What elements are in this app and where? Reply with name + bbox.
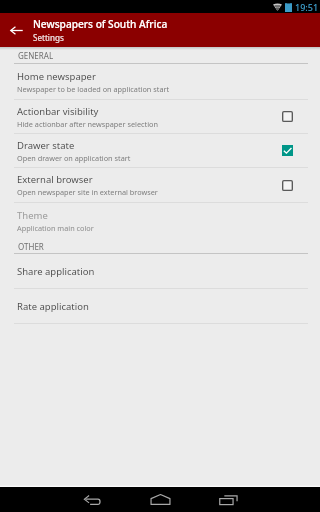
staticText: GENERAL <box>18 50 54 61</box>
staticText: Share application <box>17 265 95 278</box>
staticText: 19:51 <box>295 1 319 13</box>
staticText: Open drawer on application start <box>17 153 131 163</box>
button[interactable]: External browser <box>0 168 320 202</box>
staticText: Actionbar visibility <box>17 105 99 118</box>
staticText: Open newspaper site in external browser <box>17 187 158 197</box>
button[interactable]: Rate application <box>0 289 320 323</box>
staticText: Application main color <box>17 223 94 233</box>
staticText: External browser <box>17 173 93 186</box>
button[interactable]: Back <box>58 487 126 512</box>
button[interactable]: Home <box>126 487 194 512</box>
button[interactable]: Actionbar visibility <box>272 100 302 133</box>
staticText: Rate application <box>17 300 89 313</box>
staticText: OTHER <box>18 241 44 252</box>
button[interactable]: Theme <box>0 203 320 238</box>
button[interactable]: Navigate up <box>0 13 32 47</box>
staticText: Home newspaper <box>17 70 96 83</box>
staticText: Newspaper to be loaded on application st… <box>17 84 170 94</box>
staticText: Newspapers of South Africa <box>33 17 168 31</box>
button[interactable]: Actionbar visibility <box>0 100 320 133</box>
button[interactable]: External browser <box>272 168 302 202</box>
staticText: Settings <box>33 32 64 43</box>
button[interactable]: Recent apps <box>194 487 262 512</box>
button[interactable]: Home newspaper <box>0 64 320 99</box>
button[interactable]: Drawer state <box>272 134 302 167</box>
staticText: Theme <box>17 209 48 222</box>
button[interactable]: Share application <box>0 254 320 288</box>
button[interactable]: Drawer state <box>0 134 320 167</box>
staticText: Drawer state <box>17 139 75 152</box>
staticText: Hide actionbar after newspaper selection <box>17 119 158 129</box>
